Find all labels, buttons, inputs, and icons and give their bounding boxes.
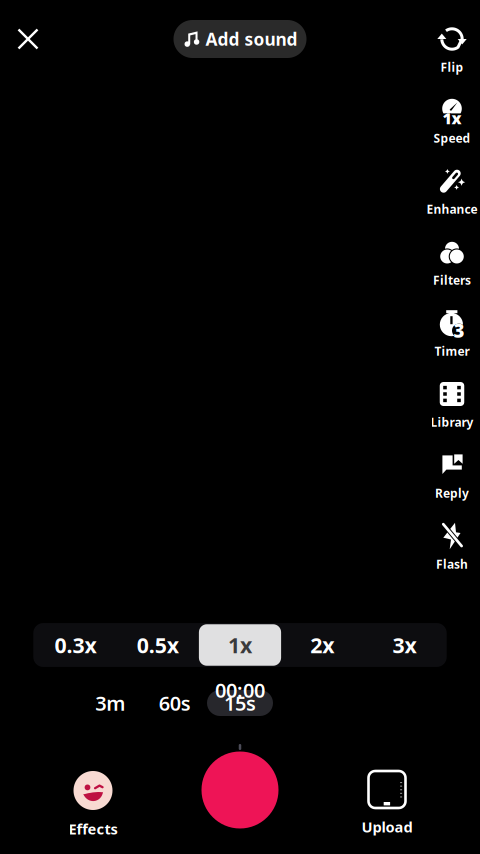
staticText: 60s: [159, 690, 191, 716]
staticText: Speed: [433, 130, 470, 146]
button[interactable]: 15s: [207, 690, 273, 716]
button[interactable]: 1x: [199, 624, 281, 666]
staticText: Flash: [436, 556, 468, 572]
staticText: Flip: [440, 59, 463, 75]
staticText: Enhance: [426, 201, 477, 217]
staticText: 3m: [95, 690, 125, 716]
staticText: Reply: [435, 485, 469, 501]
button[interactable]: 2x: [281, 624, 363, 666]
button[interactable]: Flip: [419, 18, 480, 89]
staticText: 1x: [442, 107, 461, 129]
button[interactable]: Effects: [33, 744, 153, 854]
staticText: 15s: [224, 690, 256, 716]
button[interactable]: Close: [6, 17, 50, 61]
staticText: 0.3x: [55, 631, 97, 659]
staticText: 1x: [442, 107, 461, 129]
button[interactable]: Enhance: [419, 160, 480, 231]
staticText: 1x: [228, 631, 252, 659]
staticText: 3: [453, 318, 464, 343]
button[interactable]: 0.3x: [34, 624, 117, 666]
staticText: Filters: [433, 272, 471, 288]
button[interactable]: 3m: [78, 690, 142, 716]
staticText: Add sound: [205, 27, 297, 50]
staticText: Effects: [68, 819, 117, 838]
staticText: 1x: [443, 107, 462, 129]
button[interactable]: 3x: [363, 624, 445, 666]
button[interactable]: Add sound: [173, 20, 306, 58]
button[interactable]: 3: [419, 302, 480, 373]
staticText: Timer: [434, 343, 469, 359]
button[interactable]: Flash: [419, 515, 480, 586]
staticText: 3x: [392, 631, 416, 659]
staticText: Library: [430, 414, 473, 430]
staticText: 00:00: [215, 677, 265, 703]
button[interactable]: 0.5x: [117, 624, 199, 666]
staticText: 1x: [442, 108, 461, 129]
button[interactable]: 1x: [419, 89, 480, 160]
staticText: Upload: [361, 817, 412, 836]
button[interactable]: Reply: [419, 444, 480, 515]
staticText: 2x: [310, 631, 334, 659]
button[interactable]: 60s: [142, 690, 207, 716]
staticText: 0.5x: [137, 631, 179, 659]
button[interactable]: Filters: [419, 231, 480, 302]
button[interactable]: Upload: [327, 744, 447, 854]
button[interactable]: Record: [180, 744, 300, 854]
button[interactable]: Library: [419, 373, 480, 444]
